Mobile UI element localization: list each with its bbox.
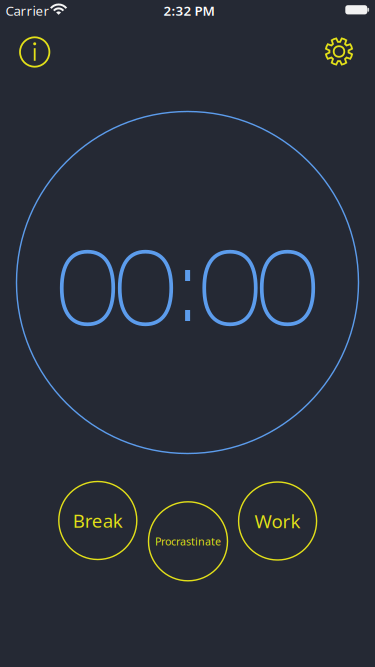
staticText: Break xyxy=(73,508,123,533)
button[interactable]: Procrastinate xyxy=(148,502,227,581)
button[interactable]: Break xyxy=(59,481,137,559)
staticText: Carrier xyxy=(5,2,49,19)
staticText: Work xyxy=(255,509,301,533)
button[interactable] xyxy=(322,34,356,68)
staticText: 2:32 PM xyxy=(163,2,214,19)
button[interactable]: Work xyxy=(239,482,317,560)
staticText: Procrastinate xyxy=(155,534,221,548)
button[interactable] xyxy=(18,35,52,69)
